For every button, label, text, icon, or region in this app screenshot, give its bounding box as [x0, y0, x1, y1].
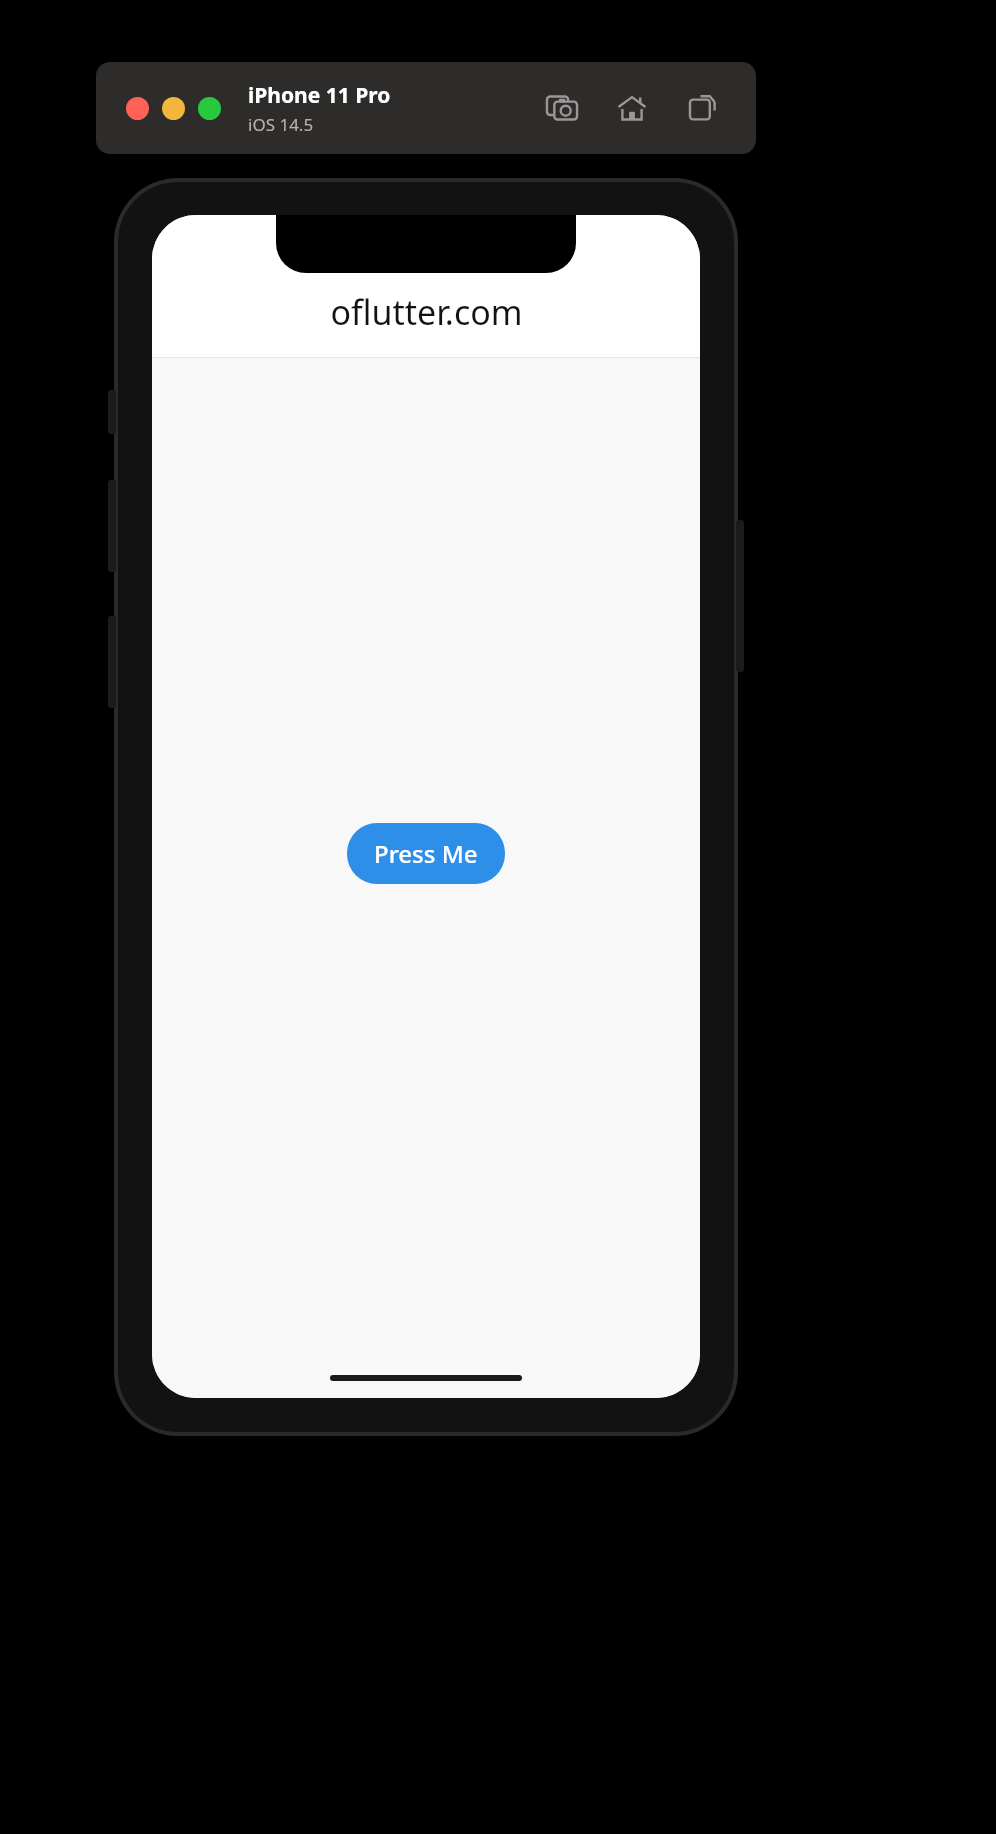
staticText: oflutter.com	[330, 289, 523, 335]
button[interactable]: Rotate	[684, 90, 720, 126]
button[interactable]: Press Me	[347, 823, 505, 884]
button[interactable]: Minimize	[162, 97, 185, 120]
button[interactable]: Home	[614, 90, 650, 126]
staticText: Press Me	[374, 837, 478, 870]
button[interactable]: Close	[126, 97, 149, 120]
staticText: iOS 14.5	[248, 113, 314, 136]
button[interactable]: Zoom	[198, 97, 221, 120]
staticText: iPhone 11 Pro	[248, 81, 391, 110]
button[interactable]: Screenshot	[544, 90, 580, 126]
